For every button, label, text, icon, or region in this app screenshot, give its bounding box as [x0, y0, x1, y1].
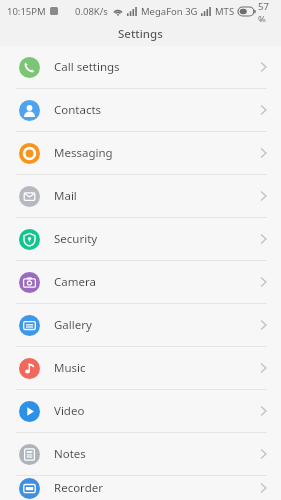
other: Open: [260, 362, 267, 374]
staticText: 57%: [258, 0, 275, 22]
button[interactable]: Notes: [0, 433, 281, 475]
staticText: Notes: [54, 446, 86, 462]
staticText: Call settings: [54, 59, 120, 75]
button[interactable]: Music: [0, 347, 281, 389]
button[interactable]: Contacts: [0, 89, 281, 131]
other: Open: [260, 482, 267, 494]
other: Open: [260, 319, 267, 331]
other: Open: [260, 104, 267, 116]
staticText: Video: [54, 403, 85, 419]
other: Open: [260, 233, 267, 245]
other: Open: [260, 405, 267, 417]
staticText: 0.08K/s: [75, 5, 108, 18]
button[interactable]: Recorder: [0, 476, 281, 500]
button[interactable]: Video: [0, 390, 281, 432]
button[interactable]: Mail: [0, 175, 281, 217]
other: Open: [260, 276, 267, 288]
button[interactable]: Security: [0, 218, 281, 260]
staticText: Messaging: [54, 145, 113, 161]
staticText: Recorder: [54, 480, 103, 496]
staticText: Security: [54, 231, 98, 247]
button[interactable]: Call settings: [0, 46, 281, 88]
staticText: Gallery: [54, 317, 92, 333]
staticText: Settings: [118, 26, 163, 42]
other: Open: [260, 61, 267, 73]
staticText: Mail: [54, 188, 77, 204]
staticText: Contacts: [54, 102, 102, 118]
staticText: MTS: [215, 5, 235, 18]
staticText: Music: [54, 360, 86, 376]
staticText: MegaFon 3G: [141, 5, 198, 18]
other: Open: [260, 190, 267, 202]
staticText: 10:15PM: [7, 5, 46, 18]
button[interactable]: Messaging: [0, 132, 281, 174]
other: Open: [260, 147, 267, 159]
staticText: Camera: [54, 274, 96, 290]
button[interactable]: Camera: [0, 261, 281, 303]
other: Open: [260, 448, 267, 460]
button[interactable]: Gallery: [0, 304, 281, 346]
